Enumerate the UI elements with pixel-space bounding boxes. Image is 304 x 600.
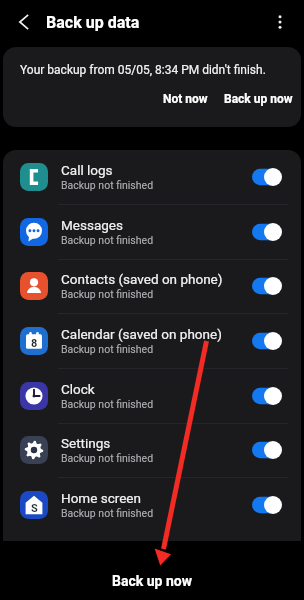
- button[interactable]: Not now: [155, 87, 216, 111]
- button[interactable]: Contacts (saved on phone): [3, 259, 301, 314]
- button[interactable]: Back up now: [0, 541, 304, 600]
- staticText: Your backup from 05/05, 8:34 PM didn't f…: [20, 63, 266, 77]
- button[interactable]: Toggle backup: [252, 168, 282, 186]
- button[interactable]: Toggle backup: [252, 387, 282, 405]
- staticText: Backup not finished: [61, 507, 154, 519]
- staticText: Backup not finished: [61, 288, 154, 300]
- staticText: Backup not finished: [61, 179, 154, 191]
- staticText: Backup not finished: [61, 452, 154, 464]
- button[interactable]: 8: [3, 314, 301, 369]
- staticText: Backup not finished: [61, 398, 154, 410]
- staticText: Call logs: [61, 162, 113, 178]
- button[interactable]: Clock: [3, 369, 301, 424]
- button[interactable]: S: [3, 478, 301, 533]
- staticText: Back up now: [224, 92, 293, 106]
- button[interactable]: Toggle backup: [252, 332, 282, 350]
- staticText: Messages: [61, 217, 123, 233]
- staticText: Home screen: [61, 490, 141, 506]
- button[interactable]: Toggle backup: [252, 223, 282, 241]
- staticText: Back up data: [46, 13, 140, 32]
- staticText: Backup not finished: [61, 343, 154, 355]
- button[interactable]: Settings: [3, 423, 301, 478]
- staticText: Calendar (saved on phone): [61, 326, 222, 342]
- staticText: Not now: [163, 92, 208, 106]
- button[interactable]: More options: [265, 7, 295, 37]
- staticText: Clock: [61, 381, 95, 397]
- button[interactable]: Back up now: [216, 87, 301, 111]
- staticText: 8: [31, 337, 38, 350]
- button[interactable]: Toggle backup: [252, 277, 282, 295]
- button[interactable]: Messages: [3, 205, 301, 260]
- staticText: S: [31, 502, 38, 515]
- staticText: Backup not finished: [61, 234, 154, 246]
- button[interactable]: Toggle backup: [252, 496, 282, 514]
- staticText: Settings: [61, 435, 111, 451]
- staticText: Back up now: [112, 573, 192, 589]
- button[interactable]: Toggle backup: [252, 441, 282, 459]
- button[interactable]: Navigate up: [8, 6, 40, 38]
- staticText: Contacts (saved on phone): [61, 271, 223, 287]
- button[interactable]: Call logs: [3, 150, 301, 205]
